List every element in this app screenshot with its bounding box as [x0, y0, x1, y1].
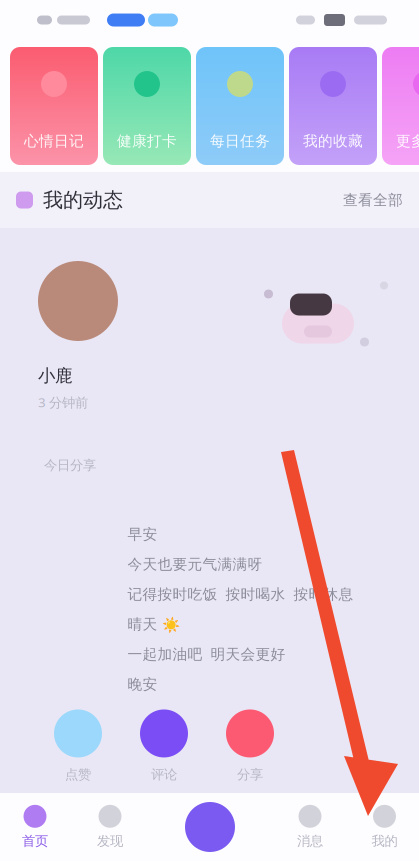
staticText: 点赞	[65, 766, 91, 783]
staticText: 我的收藏	[303, 132, 363, 150]
staticText: 查看全部	[343, 191, 403, 209]
staticText: 评论	[151, 766, 177, 783]
staticText: 早安	[127, 525, 157, 543]
staticText: 每日任务	[210, 132, 270, 150]
staticText: 分享	[237, 766, 263, 783]
staticText: 晚安	[127, 675, 157, 693]
button[interactable]: 更多功能	[382, 47, 419, 165]
button[interactable]: 我的	[350, 793, 419, 861]
button[interactable]: 首页	[0, 793, 70, 861]
button[interactable]: 心情日记	[10, 47, 98, 165]
button[interactable]: 评论	[140, 709, 188, 783]
button[interactable]: 分享	[226, 709, 274, 783]
button[interactable]: 发现	[70, 793, 150, 861]
staticText: 健康打卡	[117, 132, 177, 150]
staticText: 更多功能	[396, 132, 419, 150]
button[interactable]: 健康打卡	[103, 47, 191, 165]
button[interactable]: 每日任务	[196, 47, 284, 165]
button[interactable]: 发布	[150, 793, 270, 861]
staticText: 记得按时吃饭 按时喝水 按时休息	[127, 585, 353, 603]
staticText: 3 分钟前	[38, 393, 88, 411]
button[interactable]: 点赞	[54, 709, 102, 783]
staticText: 首页	[22, 833, 48, 849]
button[interactable]: 查看全部	[343, 191, 403, 209]
staticText: 心情日记	[24, 132, 84, 150]
staticText: 今日分享	[44, 457, 96, 473]
staticText: 我的动态	[43, 188, 123, 212]
staticText: 今天也要元气满满呀	[127, 555, 262, 573]
staticText: 我的	[371, 833, 397, 849]
staticText: 发现	[97, 833, 123, 849]
button[interactable]: 我的收藏	[289, 47, 377, 165]
staticText: 小鹿	[38, 365, 72, 386]
staticText: 晴天 ☀️	[127, 615, 179, 633]
button[interactable]: 消息	[270, 793, 350, 861]
staticText: 消息	[297, 833, 323, 849]
staticText: 一起加油吧 明天会更好	[127, 645, 285, 663]
